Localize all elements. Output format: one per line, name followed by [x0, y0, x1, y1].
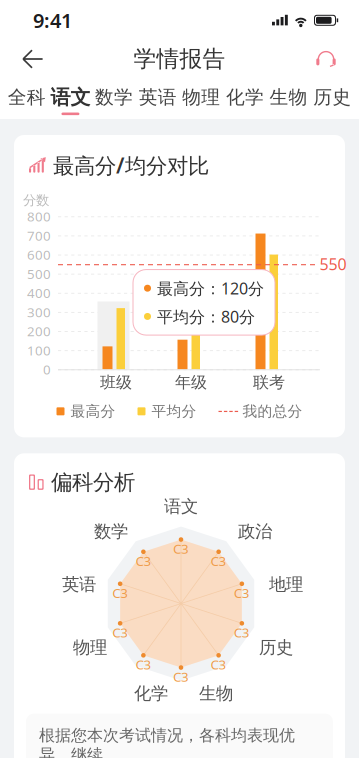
- staticText: 100: [27, 341, 51, 359]
- staticText: 9:41: [33, 7, 72, 34]
- staticText: 全科: [8, 86, 46, 109]
- button[interactable]: 数学: [92, 81, 136, 123]
- staticText: 500: [27, 265, 51, 283]
- staticText: 英语: [62, 574, 96, 595]
- staticText: C3: [211, 655, 227, 673]
- staticText: C3: [234, 623, 250, 641]
- staticText: 平均分: [151, 402, 196, 420]
- staticText: 我的总分: [242, 402, 302, 420]
- staticText: 生物: [270, 86, 308, 109]
- staticText: C3: [173, 540, 189, 557]
- staticText: C3: [211, 552, 227, 570]
- button[interactable]: 全科: [5, 81, 49, 123]
- staticText: 生物: [199, 683, 233, 704]
- staticText: 物理: [73, 637, 107, 658]
- staticText: C3: [135, 655, 151, 673]
- staticText: 最高分：120分: [157, 278, 264, 299]
- staticText: 数学: [95, 86, 133, 109]
- button[interactable]: 化学: [223, 81, 267, 123]
- staticText: C3: [234, 584, 250, 602]
- staticText: 语文: [164, 496, 198, 517]
- staticText: 物理: [182, 86, 220, 109]
- staticText: 700: [27, 227, 51, 244]
- staticText: 化学: [134, 683, 168, 704]
- staticText: 历史: [313, 86, 351, 109]
- staticText: 550: [319, 253, 346, 275]
- button[interactable]: 客服: [303, 38, 349, 80]
- staticText: C3: [112, 623, 128, 641]
- button[interactable]: 英语: [136, 81, 179, 123]
- button[interactable]: 返回: [10, 38, 56, 80]
- button[interactable]: 生物: [267, 81, 310, 123]
- staticText: 200: [27, 322, 51, 340]
- staticText: C3: [173, 668, 189, 685]
- button[interactable]: 物理: [179, 81, 223, 123]
- staticText: 最高分/均分对比: [53, 151, 209, 179]
- staticText: 历史: [259, 637, 293, 658]
- staticText: 语文: [50, 85, 90, 110]
- staticText: C3: [112, 584, 128, 602]
- staticText: 0: [43, 360, 51, 378]
- staticText: 偏科分析: [51, 469, 135, 495]
- staticText: 化学: [226, 86, 264, 109]
- staticText: 地理: [269, 574, 303, 595]
- staticText: 800: [27, 207, 51, 225]
- staticText: C3: [135, 552, 151, 570]
- staticText: 300: [27, 303, 51, 321]
- staticText: 学情报告: [133, 45, 225, 73]
- staticText: 根据您本次考试情况，各科均表现优异，继续: [39, 725, 295, 758]
- staticText: 年级: [175, 372, 207, 392]
- staticText: 英语: [139, 86, 177, 109]
- staticText: 数学: [94, 521, 128, 542]
- staticText: 600: [27, 246, 51, 263]
- button[interactable]: 历史: [310, 81, 354, 123]
- staticText: 400: [27, 284, 51, 302]
- staticText: 班级: [100, 372, 132, 392]
- staticText: 分数: [23, 192, 49, 208]
- staticText: 联考: [253, 372, 285, 392]
- staticText: 最高分: [70, 402, 115, 420]
- button[interactable]: 语文: [49, 80, 92, 124]
- staticText: 平均分：80分: [157, 306, 255, 327]
- staticText: 政治: [238, 521, 272, 542]
